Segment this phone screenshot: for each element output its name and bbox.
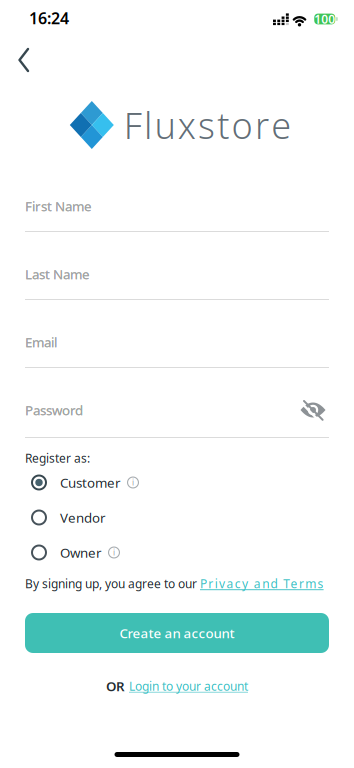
textField[interactable]: Last Name bbox=[25, 265, 329, 283]
staticText: OR bbox=[106, 677, 125, 695]
staticText: t bbox=[217, 101, 229, 149]
textField[interactable]: Email bbox=[25, 333, 329, 351]
button[interactable]: Back bbox=[1, 38, 45, 82]
button[interactable]: Show password bbox=[299, 398, 327, 422]
staticText: Email bbox=[25, 333, 57, 351]
staticText: Customer bbox=[60, 474, 121, 491]
staticText: First Name bbox=[25, 197, 92, 215]
button[interactable]: About Customer role bbox=[127, 476, 139, 488]
secureTextField[interactable]: Password bbox=[25, 401, 329, 419]
staticText: i bbox=[132, 477, 134, 488]
staticText: Register as: bbox=[25, 450, 90, 466]
staticText: 100 bbox=[314, 11, 335, 27]
staticText: Vendor bbox=[60, 509, 106, 526]
staticText: x bbox=[178, 101, 196, 149]
staticText: Owner bbox=[60, 544, 102, 561]
staticText: Last Name bbox=[25, 265, 90, 283]
staticText: Password bbox=[25, 401, 83, 419]
staticText: Privacy and Terms bbox=[200, 575, 324, 591]
button[interactable]: Customer bbox=[31, 474, 121, 491]
button[interactable]: Vendor bbox=[31, 509, 106, 526]
button[interactable]: Login to your account bbox=[129, 678, 248, 694]
staticText: e bbox=[271, 101, 291, 149]
staticText: By signing up, you agree to our bbox=[25, 575, 200, 591]
staticText: Email bbox=[25, 333, 57, 351]
button[interactable]: About Owner role bbox=[108, 546, 120, 558]
staticText: Password bbox=[25, 401, 83, 419]
staticText: s bbox=[198, 101, 215, 149]
staticText: F bbox=[124, 101, 142, 149]
staticText: Login to your account bbox=[129, 678, 248, 694]
staticText: r bbox=[255, 101, 269, 149]
staticText: i bbox=[113, 547, 115, 558]
button[interactable]: Owner bbox=[31, 544, 102, 561]
staticText: Create an account bbox=[119, 624, 234, 642]
button[interactable]: Privacy and Terms bbox=[200, 575, 324, 591]
staticText: Last Name bbox=[25, 265, 90, 283]
staticText: l bbox=[144, 101, 152, 149]
staticText: First Name bbox=[25, 197, 92, 215]
staticText: o bbox=[232, 101, 253, 149]
textField[interactable]: First Name bbox=[25, 197, 329, 215]
button[interactable]: Create an account bbox=[25, 613, 329, 653]
staticText: 16:24 bbox=[29, 7, 69, 29]
staticText: u bbox=[154, 101, 175, 149]
